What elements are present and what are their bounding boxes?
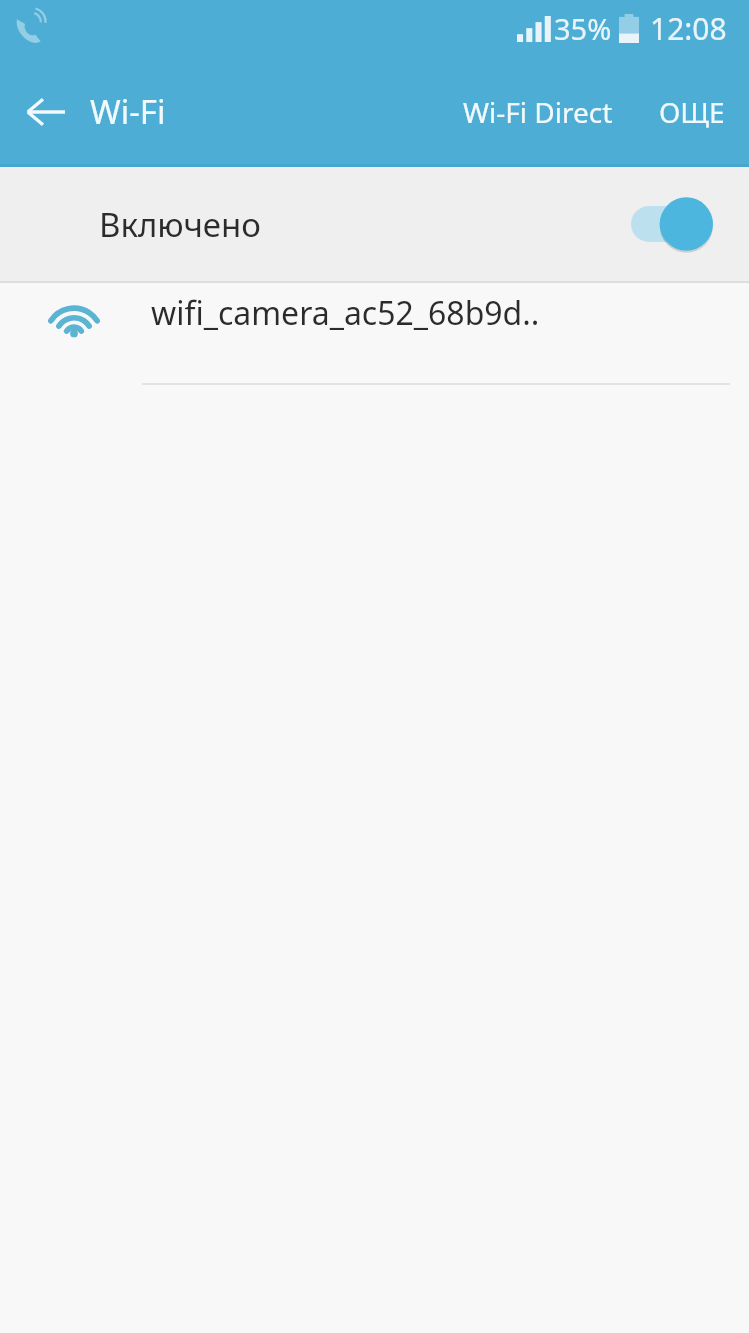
staticText: wifi_camera_ac52_68b9d.. — [151, 291, 540, 335]
button[interactable]: Wi-Fi on — [631, 195, 713, 253]
button[interactable]: wifi_camera_ac52_68b9d.. — [0, 283, 749, 383]
staticText: ОЩЕ — [659, 93, 725, 131]
staticText: Включено — [99, 202, 261, 247]
button[interactable]: Back — [12, 78, 80, 146]
staticText: 35% — [554, 9, 612, 48]
staticText: Wi-Fi Direct — [463, 93, 613, 131]
button[interactable]: Wi-Fi Direct — [449, 83, 627, 141]
staticText: Wi-Fi — [90, 89, 166, 134]
staticText: 12:08 — [650, 8, 727, 49]
button[interactable]: Включено — [0, 167, 749, 281]
button[interactable]: ОЩЕ — [649, 83, 735, 141]
